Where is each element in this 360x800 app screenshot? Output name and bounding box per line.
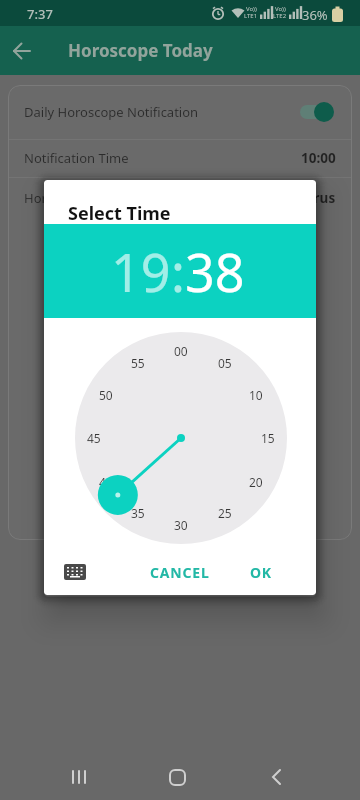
staticText: 30 — [174, 517, 188, 533]
staticText: 05 — [218, 355, 232, 371]
staticText: Vo)) — [275, 5, 286, 13]
staticText: 50 — [99, 387, 113, 403]
staticText: Daily Horoscope Notification — [24, 103, 300, 121]
staticText: LTE2 — [273, 12, 287, 20]
button[interactable] — [64, 564, 86, 580]
staticText: 36% — [302, 6, 328, 24]
button[interactable] — [300, 102, 334, 122]
staticText: Horoscope Sign — [24, 189, 290, 207]
staticText: 35 — [131, 505, 145, 521]
button[interactable] — [56, 760, 104, 792]
button[interactable]: Horoscope Sign — [8, 178, 352, 218]
staticText: 19 — [111, 236, 171, 307]
staticText: 40 — [99, 474, 113, 490]
staticText: 25 — [218, 505, 232, 521]
button[interactable] — [154, 760, 202, 792]
staticText: LTE1 — [244, 12, 258, 20]
button[interactable]: CANCEL — [148, 550, 212, 595]
staticText: OK — [250, 563, 272, 582]
staticText: 20 — [249, 474, 263, 490]
staticText: Horoscope Today — [68, 39, 213, 62]
staticText: Taurus — [290, 189, 336, 207]
staticText: 10:00 — [301, 149, 336, 167]
staticText: 38 — [185, 236, 245, 307]
staticText: Vo)) — [246, 5, 257, 13]
staticText: 00 — [174, 343, 188, 359]
staticText: 7:37 — [27, 5, 53, 23]
staticText: : — [171, 236, 185, 307]
button[interactable]: Notification Time — [8, 139, 352, 177]
button[interactable] — [13, 42, 31, 60]
button[interactable]: OK — [237, 550, 285, 595]
button[interactable]: Daily Horoscope Notification — [8, 85, 352, 139]
staticText: 45 — [87, 430, 101, 446]
button[interactable] — [252, 760, 300, 792]
staticText: Notification Time — [24, 149, 301, 167]
staticText: 55 — [131, 355, 145, 371]
staticText: 10 — [249, 387, 263, 403]
staticText: Select Time — [68, 201, 171, 226]
staticText: 15 — [261, 430, 275, 446]
staticText: CANCEL — [150, 563, 210, 582]
